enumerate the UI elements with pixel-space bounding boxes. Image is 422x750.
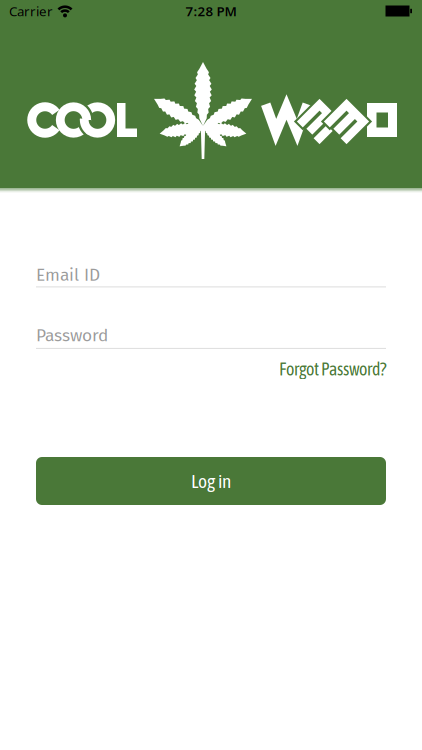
button[interactable]: Password	[36, 325, 386, 349]
staticText: Email ID	[36, 265, 100, 285]
staticText: Carrier	[9, 2, 53, 20]
staticText: Log in	[191, 470, 231, 492]
staticText: Forgot Password?	[279, 359, 386, 379]
button[interactable]: Email ID	[36, 265, 386, 287]
staticText: 7:28 PM	[185, 2, 236, 20]
button[interactable]: Forgot Password?	[279, 359, 386, 379]
button[interactable]: Log in	[36, 457, 386, 505]
staticText: Password	[36, 325, 108, 346]
